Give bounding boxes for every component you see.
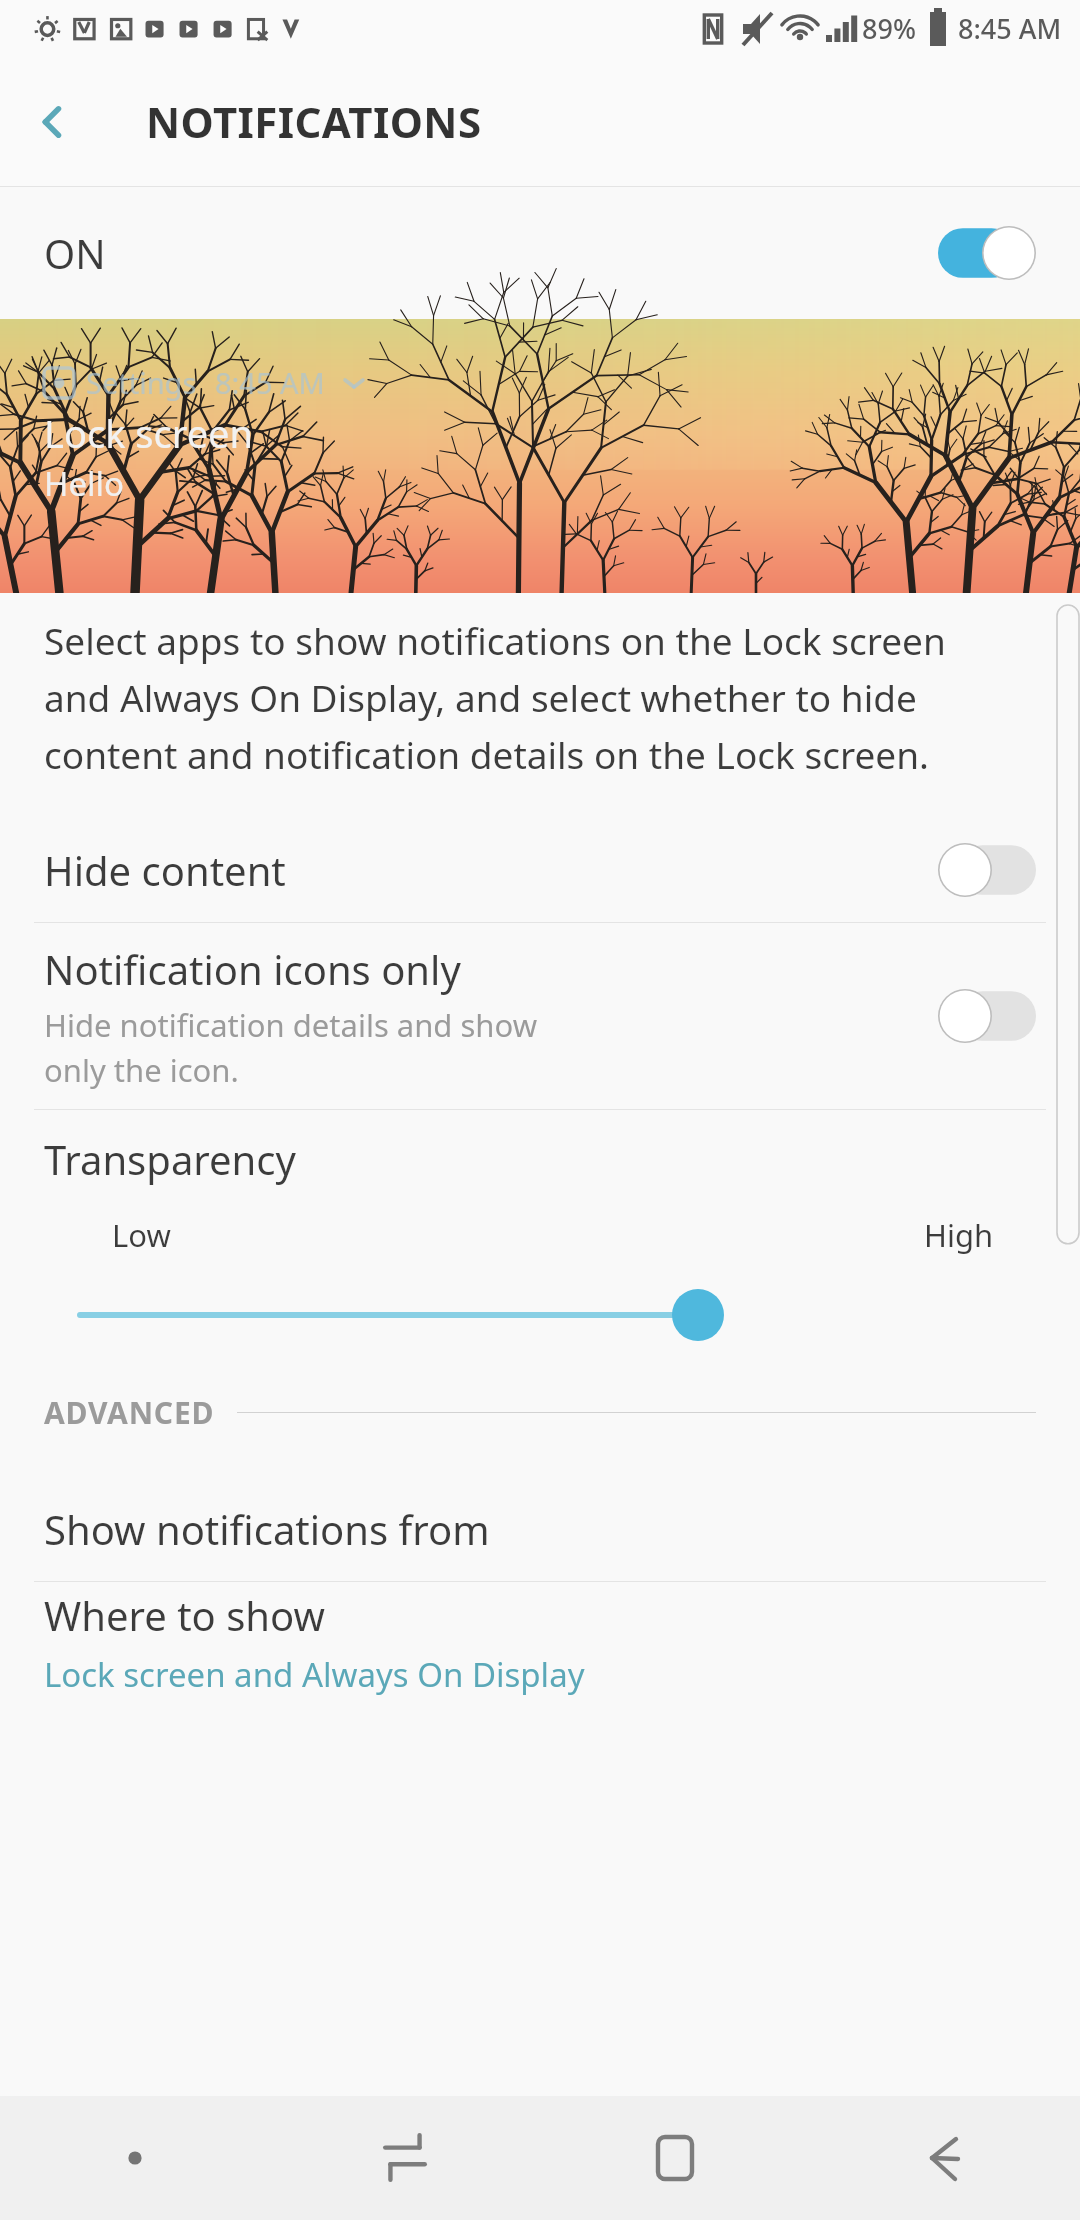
staticText: Notification icons only xyxy=(44,942,461,996)
staticText: Hide notification details and show only … xyxy=(44,1004,537,1091)
button[interactable]: Keyboard indicator xyxy=(0,2096,270,2220)
button[interactable]: ON xyxy=(0,187,1080,319)
staticText: NOTIFICATIONS xyxy=(146,93,482,150)
staticText: Hide content xyxy=(44,843,286,897)
button[interactable]: Back xyxy=(20,87,90,157)
staticText: ADVANCED xyxy=(44,1392,215,1433)
button[interactable]: Show notifications from xyxy=(0,1477,1080,1581)
staticText: Hello xyxy=(44,461,125,506)
button[interactable]: Hide content xyxy=(0,818,1080,922)
staticText: Settings xyxy=(86,363,197,402)
button[interactable]: Home xyxy=(540,2096,810,2220)
staticText: 8:45 AM xyxy=(215,363,325,402)
staticText: Where to show xyxy=(44,1588,325,1642)
staticText: Show notifications from xyxy=(44,1502,490,1556)
staticText: Lock screen xyxy=(44,407,254,459)
staticText: Select apps to show notifications on the… xyxy=(44,615,1018,780)
button[interactable]: Where to show xyxy=(0,1582,1080,1702)
button[interactable]: Back xyxy=(810,2096,1080,2220)
staticText: Transparency xyxy=(44,1132,296,1186)
staticText: 89% xyxy=(862,10,916,47)
button[interactable]: Transparency slider xyxy=(0,1280,1080,1350)
staticText: High xyxy=(924,1214,994,1256)
button[interactable]: Notification icons only xyxy=(0,923,1080,1109)
staticText: 8:45 AM xyxy=(958,10,1062,47)
staticText: Lock screen and Always On Display xyxy=(44,1652,585,1697)
button[interactable]: Recents xyxy=(270,2096,540,2220)
staticText: ON xyxy=(44,226,106,280)
staticText: Low xyxy=(112,1214,171,1256)
